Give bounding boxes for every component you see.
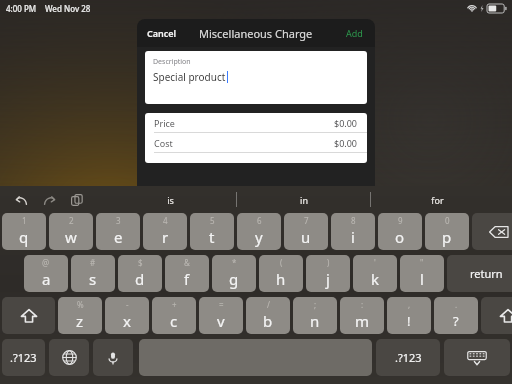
staticText: ; — [314, 299, 317, 310]
staticText: = — [219, 299, 224, 310]
button[interactable]: @ — [24, 255, 68, 292]
button[interactable]: , — [387, 297, 431, 334]
button[interactable]: Cancel — [143, 23, 181, 43]
staticText: Wed Nov 28 — [45, 3, 91, 14]
staticText: l — [420, 269, 424, 289]
staticText: r — [162, 227, 169, 247]
button[interactable]: Shift — [2, 297, 55, 334]
staticText: x — [123, 311, 131, 331]
button[interactable]: Dictate — [93, 339, 133, 376]
button[interactable]: is — [104, 186, 236, 213]
button[interactable]: Undo — [10, 189, 32, 211]
staticText: 0 — [445, 215, 450, 226]
staticText: ) — [327, 257, 330, 268]
staticText: for — [431, 194, 444, 206]
staticText: / — [267, 299, 270, 310]
staticText: 1 — [22, 215, 27, 226]
button[interactable]: : — [340, 297, 384, 334]
staticText: h — [276, 269, 286, 289]
button[interactable]: / — [246, 297, 290, 334]
staticText: . — [455, 299, 458, 310]
staticText: $0.00 — [334, 117, 358, 129]
button[interactable]: Switch language — [49, 339, 89, 376]
button[interactable]: 9 — [378, 213, 422, 250]
button[interactable]: 2 — [49, 213, 93, 250]
staticText: 9 — [398, 215, 403, 226]
button[interactable]: Price — [145, 113, 367, 132]
button[interactable]: % — [58, 297, 102, 334]
button[interactable]: for — [371, 186, 504, 213]
staticText: $ — [138, 257, 143, 268]
button[interactable]: = — [199, 297, 243, 334]
button[interactable]: & — [165, 255, 209, 292]
button[interactable]: 5 — [190, 213, 234, 250]
staticText: .?123 — [395, 350, 422, 365]
staticText: * — [232, 257, 237, 268]
button[interactable]: Cost — [145, 133, 367, 152]
button[interactable]: - — [105, 297, 149, 334]
staticText: 6 — [257, 215, 262, 226]
staticText: i — [351, 227, 355, 247]
button[interactable]: ' — [353, 255, 397, 292]
staticText: $0.00 — [334, 137, 358, 149]
button[interactable]: 6 — [237, 213, 281, 250]
button[interactable]: 7 — [284, 213, 328, 250]
button[interactable]: Hide keyboard — [444, 339, 510, 376]
staticText: p — [442, 227, 452, 247]
button[interactable]: ) — [306, 255, 350, 292]
staticText: 4 — [163, 215, 168, 226]
staticText: : — [361, 299, 364, 310]
staticText: - — [126, 299, 129, 310]
button[interactable]: ( — [259, 255, 303, 292]
button[interactable]: 0 — [425, 213, 469, 250]
button[interactable]: ; — [293, 297, 337, 334]
staticText: , — [408, 299, 411, 310]
button[interactable]: Description — [145, 51, 367, 104]
button[interactable]: .?123 — [376, 339, 440, 376]
staticText: ! — [407, 312, 411, 330]
staticText: return — [470, 266, 503, 281]
staticText: # — [90, 257, 96, 268]
button[interactable]: Redo — [38, 189, 60, 211]
staticText: c — [170, 311, 178, 331]
button[interactable]: # — [71, 255, 115, 292]
staticText: ( — [280, 257, 283, 268]
button[interactable]: . — [434, 297, 478, 334]
staticText: d — [135, 269, 145, 289]
button[interactable]: Paste — [66, 189, 88, 211]
button[interactable]: in — [237, 186, 370, 213]
button[interactable]: return — [447, 255, 512, 292]
staticText: s — [89, 269, 97, 289]
staticText: is — [167, 194, 174, 206]
button[interactable]: Shift — [481, 297, 512, 334]
staticText: Description — [153, 57, 191, 67]
button[interactable]: Add — [342, 23, 367, 43]
staticText: @ — [42, 257, 50, 268]
button[interactable]: + — [152, 297, 196, 334]
staticText: z — [76, 311, 84, 331]
button[interactable]: * — [212, 255, 256, 292]
staticText: 2 — [69, 215, 74, 226]
staticText: g — [229, 269, 239, 289]
staticText: t — [209, 227, 215, 247]
staticText: u — [301, 227, 311, 247]
button[interactable]: 3 — [96, 213, 140, 250]
staticText: Add — [346, 27, 363, 39]
button[interactable]: 1 — [2, 213, 46, 250]
staticText: Cost — [154, 137, 173, 149]
button[interactable]: 4 — [143, 213, 187, 250]
staticText: y — [255, 227, 263, 247]
button[interactable]: Backspace — [472, 213, 512, 250]
staticText: ' — [374, 257, 376, 268]
button[interactable]: " — [400, 255, 444, 292]
staticText: b — [263, 311, 273, 331]
button[interactable]: 8 — [331, 213, 375, 250]
staticText: e — [114, 227, 123, 247]
staticText: o — [395, 227, 405, 247]
button[interactable]: .?123 — [2, 339, 45, 376]
staticText: % — [77, 299, 84, 310]
button[interactable]: $ — [118, 255, 162, 292]
staticText: Miscellaneous Charge — [199, 26, 313, 41]
staticText: m — [355, 311, 370, 331]
